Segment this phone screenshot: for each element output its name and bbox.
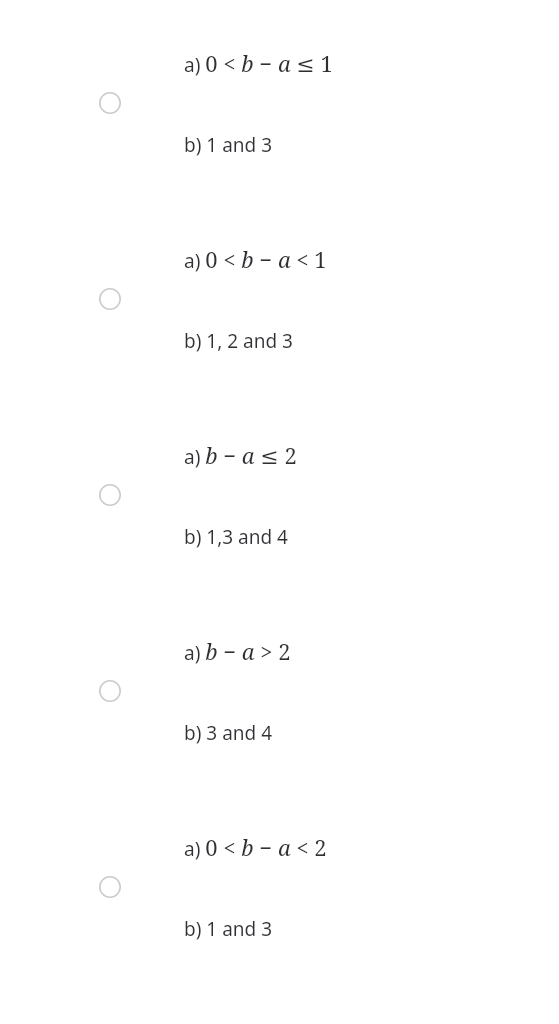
staticText: b) 3 and 4	[184, 720, 273, 746]
button[interactable]: Select option 1, 2 and 3	[0, 196, 559, 392]
other: Select option 1 and 3	[99, 92, 121, 114]
button[interactable]: Select option 1,3 and 4	[0, 392, 559, 588]
staticText: b) 1,3 and 4	[184, 524, 288, 550]
staticText: b) 1 and 3	[184, 132, 273, 158]
staticText: a) 0 < b − a ≤ 1	[184, 48, 333, 78]
other: Select option 3 and 4	[99, 680, 121, 702]
other: Select option 1 and 3	[99, 876, 121, 898]
staticText: a) 0 < b − a < 2	[184, 832, 327, 862]
staticText: b) 1, 2 and 3	[184, 328, 293, 354]
staticText: b) 1 and 3	[184, 916, 273, 942]
other: Select option 1, 2 and 3	[99, 288, 121, 310]
button[interactable]: Select option 1 and 3	[0, 0, 559, 196]
staticText: a) b − a > 2	[184, 636, 291, 666]
staticText: a) 0 < b − a < 1	[184, 244, 327, 274]
button[interactable]: Select option 1 and 3	[0, 784, 559, 980]
staticText: a) b − a ≤ 2	[184, 440, 297, 470]
other: Select option 1,3 and 4	[99, 484, 121, 506]
button[interactable]: Select option 3 and 4	[0, 588, 559, 784]
